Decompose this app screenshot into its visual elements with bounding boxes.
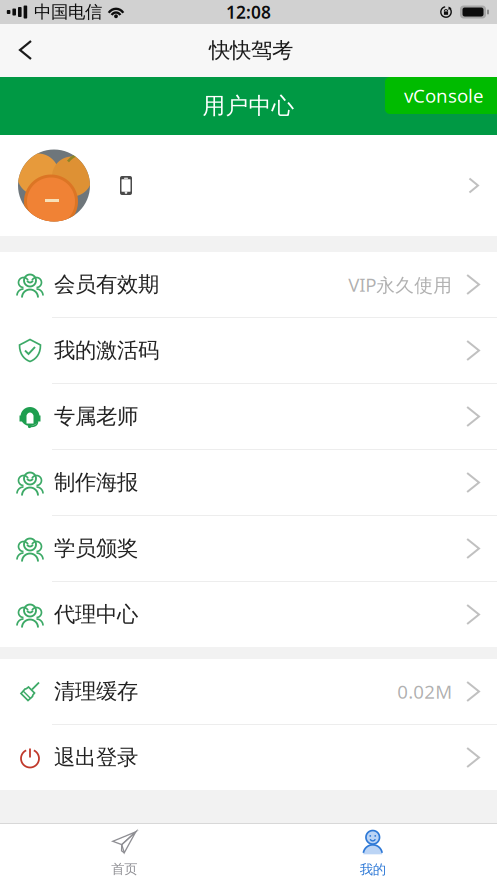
button[interactable]: 首页 [0,824,248,883]
staticText: 快快驾考 [209,37,293,64]
staticText: 首页 [111,861,137,877]
staticText: 代理中心 [54,601,138,628]
button[interactable]: 学员颁奖 [0,516,497,582]
staticText: VIP永久使用 [348,272,452,297]
staticText: 清理缓存 [54,678,138,705]
staticText: 12:08 [226,0,271,23]
staticText: 我的 [360,861,386,878]
button[interactable]: 制作海报 [0,450,497,516]
button[interactable] [0,135,497,236]
staticText: 专属老师 [54,403,138,430]
button[interactable]: 专属老师 [0,384,497,450]
button[interactable]: 我的激活码 [0,318,497,384]
button[interactable]: Back [0,24,47,77]
staticText: 会员有效期 [54,271,159,298]
staticText: 学员颁奖 [54,535,138,562]
staticText: 退出登录 [54,744,138,771]
staticText: 0.02M [397,679,452,704]
button[interactable]: 代理中心 [0,582,497,647]
staticText: 我的激活码 [54,337,159,364]
staticText: 用户中心 [202,92,294,120]
staticText: 制作海报 [54,469,138,496]
button[interactable]: 会员有效期 [0,252,497,318]
staticText: 中国电信 [34,1,102,23]
button[interactable]: 清理缓存 [0,659,497,725]
button[interactable]: vConsole [385,77,497,114]
button[interactable]: 退出登录 [0,725,497,790]
button[interactable]: 我的 [248,824,497,883]
staticText: vConsole [404,83,484,108]
